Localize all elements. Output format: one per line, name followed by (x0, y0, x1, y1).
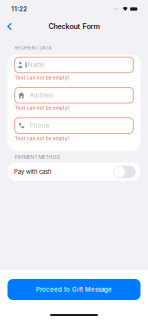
staticText: 11:22 (11, 5, 27, 13)
button[interactable]: Pay with cash (0, 163, 148, 181)
staticText: Name (28, 61, 44, 69)
button[interactable]: Phone (15, 118, 133, 133)
button[interactable]: Address (15, 87, 133, 103)
staticText: RECIPIENT DATA (15, 45, 52, 51)
staticText: Phone (30, 122, 49, 129)
staticText: Text can not be empty! (15, 75, 69, 81)
button[interactable]: Proceed to Gift Message (0, 279, 148, 300)
button[interactable]: Back (0, 18, 18, 34)
staticText: Text can not be empty! (15, 136, 69, 141)
button[interactable]: Name (15, 57, 133, 73)
staticText: Checkout Form (48, 22, 99, 31)
staticText: Pay with cash (14, 168, 51, 175)
staticText: Text can not be empty! (15, 105, 69, 111)
staticText: PAYMENT METHOD (15, 154, 61, 160)
staticText: Proceed to Gift Message (36, 286, 112, 293)
staticText: Address (30, 92, 53, 99)
